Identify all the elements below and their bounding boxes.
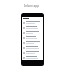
- button[interactable]: [22, 35, 43, 40]
- button[interactable]: [22, 45, 43, 50]
- button[interactable]: [22, 30, 43, 35]
- button[interactable]: [22, 50, 43, 55]
- staticText: Inbox app: [24, 4, 40, 8]
- button[interactable]: [22, 25, 43, 30]
- button[interactable]: [22, 55, 43, 60]
- button[interactable]: [22, 40, 43, 45]
- button[interactable]: [22, 20, 43, 25]
